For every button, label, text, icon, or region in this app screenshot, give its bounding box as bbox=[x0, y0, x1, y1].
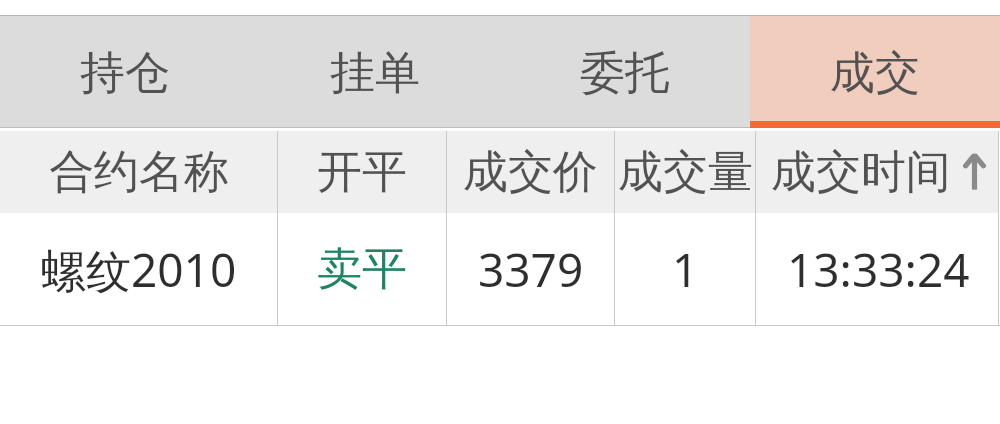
staticText: 3379 bbox=[478, 238, 584, 301]
staticText: 成交 bbox=[830, 45, 920, 102]
button[interactable]: 螺纹2010 bbox=[0, 213, 277, 325]
staticText: 合约名称 bbox=[49, 144, 229, 201]
button[interactable]: 成交 bbox=[750, 16, 1000, 127]
button[interactable]: 挂单 bbox=[250, 16, 500, 127]
button[interactable]: 合约名称 bbox=[0, 131, 277, 213]
button[interactable]: 1 bbox=[615, 213, 755, 325]
button[interactable]: 委托 bbox=[500, 16, 750, 127]
button[interactable]: 成交时间 bbox=[756, 131, 1000, 213]
staticText: 卖平 bbox=[317, 241, 407, 298]
button[interactable]: 成交价 bbox=[447, 131, 614, 213]
button[interactable]: 成交量 bbox=[615, 131, 755, 213]
button[interactable]: 13:33:24 bbox=[756, 213, 1000, 325]
staticText: 挂单 bbox=[330, 45, 420, 102]
staticText: 持仓 bbox=[80, 45, 170, 102]
staticText: 委托 bbox=[580, 45, 670, 102]
staticText: 成交量 bbox=[618, 144, 753, 201]
staticText: 1 bbox=[672, 238, 699, 301]
other: Sort by trade time ascending bbox=[963, 153, 986, 192]
staticText: 成交时间 bbox=[771, 144, 951, 201]
staticText: 螺纹2010 bbox=[41, 238, 237, 301]
staticText: 开平 bbox=[317, 144, 407, 201]
staticText: 成交价 bbox=[463, 144, 598, 201]
button[interactable]: 开平 bbox=[278, 131, 446, 213]
button[interactable]: 持仓 bbox=[0, 16, 250, 127]
button[interactable]: 卖平 bbox=[278, 213, 446, 325]
staticText: 13:33:24 bbox=[787, 238, 970, 301]
button[interactable]: 3379 bbox=[447, 213, 614, 325]
